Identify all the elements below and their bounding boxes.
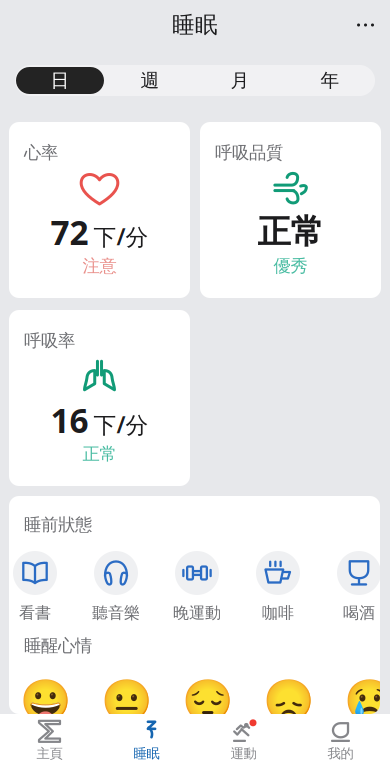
staticText: 聽音樂 (92, 603, 140, 623)
staticText: 下/分 (93, 221, 148, 251)
button[interactable]: 不好 (266, 679, 310, 723)
staticText: 月 (230, 69, 249, 92)
button[interactable]: 很好 (23, 679, 67, 723)
staticText: 睡眠 (172, 11, 218, 39)
button[interactable]: 咖啡 (266, 551, 310, 627)
staticText: 呼吸品質 (215, 142, 283, 163)
staticText: 😀 (19, 677, 70, 725)
button[interactable]: 疲倦 (185, 679, 229, 723)
staticText: 72 (50, 210, 88, 254)
button[interactable]: 睡眠 (98, 714, 195, 768)
staticText: 睡醒心情 (24, 635, 92, 656)
staticText: 看書 (19, 603, 51, 623)
staticText: 我的 (327, 745, 353, 762)
staticText: 16 (50, 398, 88, 442)
button[interactable]: More options (342, 3, 386, 47)
button[interactable]: 普通 (104, 679, 148, 723)
staticText: 週 (140, 69, 159, 92)
staticText: 😢 (343, 677, 390, 725)
staticText: 下/分 (93, 409, 148, 439)
staticText: 心率 (24, 142, 58, 163)
button[interactable]: 呼吸率 (9, 310, 190, 486)
button[interactable]: 喝酒 (347, 551, 390, 627)
button[interactable]: 心率 (9, 122, 190, 298)
staticText: 睡前狀態 (24, 514, 92, 535)
staticText: 日 (50, 69, 69, 92)
staticText: 呼吸率 (24, 330, 75, 351)
button[interactable]: 我的 (292, 714, 389, 768)
button[interactable]: 聽音樂 (104, 551, 148, 627)
staticText: 睡眠 (133, 745, 159, 762)
staticText: 正常 (257, 211, 323, 252)
staticText: 正常 (82, 443, 116, 465)
staticText: 喝酒 (343, 603, 375, 623)
button[interactable]: 晚運動 (185, 551, 229, 627)
button[interactable]: 日 (15, 65, 105, 96)
staticText: 😔 (181, 677, 232, 725)
button[interactable]: 很差 (347, 679, 390, 723)
button[interactable]: 月 (195, 65, 285, 96)
staticText: 優秀 (273, 255, 307, 277)
staticText: 注意 (82, 255, 116, 277)
button[interactable]: 主頁 (1, 714, 98, 768)
button[interactable]: 年 (285, 65, 375, 96)
staticText: 主頁 (36, 745, 62, 762)
staticText: 😞 (262, 677, 313, 725)
button[interactable]: 看書 (23, 551, 67, 627)
staticText: 咖啡 (262, 603, 294, 623)
staticText: 😐 (100, 677, 151, 725)
staticText: 晚運動 (173, 603, 221, 623)
button[interactable]: 運動 (195, 714, 292, 768)
staticText: 年 (320, 69, 339, 92)
staticText: 運動 (230, 745, 256, 762)
button[interactable]: 週 (105, 65, 195, 96)
button[interactable]: 呼吸品質 (200, 122, 381, 298)
